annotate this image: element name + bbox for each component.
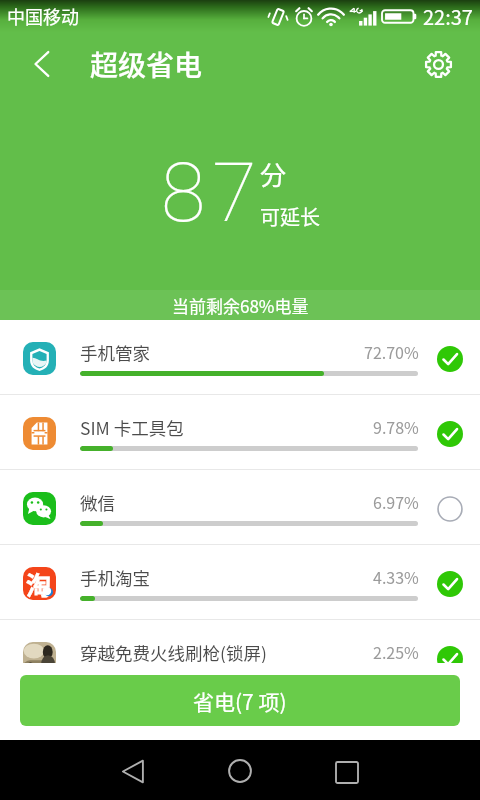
button[interactable]: 穿越免费火线刷枪(锁屏): [0, 620, 480, 663]
button[interactable]: 淘: [0, 545, 480, 619]
staticText: 手机管家: [80, 340, 150, 365]
staticText: 2.25%: [373, 640, 419, 663]
staticText: 87: [161, 146, 264, 241]
staticText: 当前剩余68%电量: [172, 293, 309, 318]
staticText: 省电(7 项): [193, 686, 287, 716]
button[interactable]: Selected: [428, 637, 472, 680]
button[interactable]: 手机管家: [0, 320, 480, 394]
staticText: 6.97%: [373, 490, 419, 513]
button[interactable]: Recents: [319, 744, 375, 800]
button[interactable]: Not selected: [428, 487, 472, 531]
staticText: 淘: [26, 566, 52, 599]
button[interactable]: Settings: [410, 36, 466, 92]
button[interactable]: SIM 卡工具包: [0, 395, 480, 469]
button[interactable]: Back: [13, 36, 69, 92]
button[interactable]: Selected: [428, 562, 472, 606]
staticText: 4.33%: [373, 565, 419, 588]
staticText: 微信: [80, 490, 115, 515]
staticText: SIM 卡工具包: [80, 415, 184, 440]
staticText: 9.78%: [373, 415, 419, 438]
staticText: 超级省电: [90, 44, 203, 85]
staticText: 穿越免费火线刷枪(锁屏): [80, 640, 267, 665]
staticText: 中国移动: [7, 3, 79, 29]
staticText: 22:37: [423, 2, 473, 31]
button[interactable]: Selected: [428, 412, 472, 456]
staticText: 72.70%: [364, 340, 419, 363]
staticText: 分: [260, 155, 287, 193]
button[interactable]: 省电(7 项): [20, 675, 460, 726]
staticText: 手机淘宝: [80, 565, 150, 590]
button[interactable]: Back: [105, 743, 161, 799]
staticText: 可延长: [260, 202, 320, 231]
button[interactable]: Home: [212, 743, 268, 799]
button[interactable]: Selected: [428, 337, 472, 381]
button[interactable]: 微信: [0, 470, 480, 544]
